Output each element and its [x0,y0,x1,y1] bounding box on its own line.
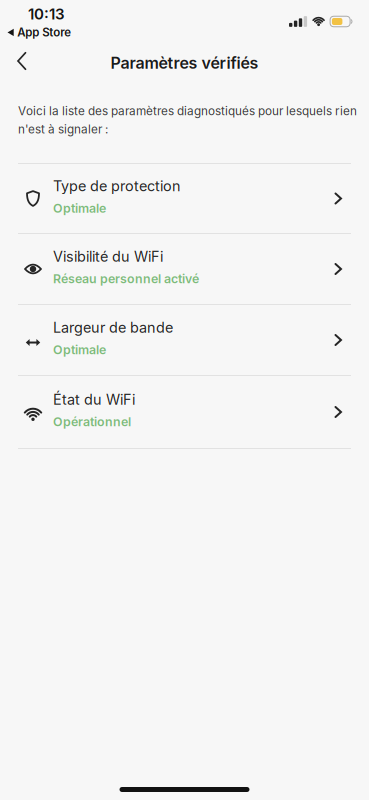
button[interactable]: Back [0,52,26,70]
staticText: Paramètres vérifiés [110,53,258,73]
staticText: Visibilité du WiFi [53,248,163,265]
staticText: Réseau personnel activé [53,271,199,286]
button[interactable]: Type de protection [0,164,369,233]
button[interactable]: État du WiFi [0,376,369,448]
button[interactable]: Largeur de bande [0,305,369,375]
staticText: Optimale [53,201,106,216]
staticText: Type de protection [53,177,181,195]
staticText: Largeur de bande [53,319,173,336]
staticText: 10:13 [28,5,65,23]
staticText: Voici la liste des paramètres diagnostiq… [18,104,357,136]
button[interactable]: Visibilité du WiFi [0,234,369,304]
button[interactable]: Back to App Store [7,25,71,39]
staticText: App Store [17,25,71,39]
staticText: État du WiFi [53,391,135,408]
staticText: Opérationnel [53,414,131,429]
staticText: Optimale [53,342,106,357]
